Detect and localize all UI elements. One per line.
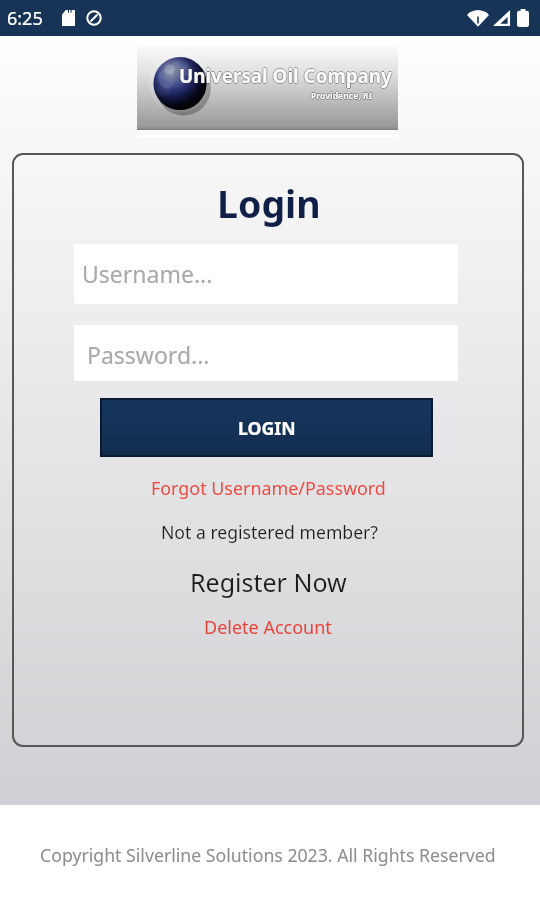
staticText: Universal Oil Company — [179, 62, 392, 88]
staticText: Universal Oil Company — [180, 63, 393, 89]
other: Wi-Fi — [467, 9, 489, 27]
staticText: Universal Oil Company — [179, 63, 392, 89]
staticText: Username... — [82, 258, 213, 289]
staticText: Delete Account — [204, 615, 332, 640]
staticText: Register Now — [190, 565, 347, 599]
other: Battery — [517, 9, 529, 27]
other: Do not disturb — [86, 10, 102, 26]
staticText: Providence, RI — [311, 89, 373, 101]
button[interactable]: Username... — [74, 244, 458, 304]
staticText: Providence, RI — [312, 90, 374, 102]
staticText: Password... — [87, 339, 210, 370]
button[interactable]: LOGIN — [100, 398, 433, 457]
staticText: Providence, RI — [311, 90, 373, 102]
staticText: 6:25 — [7, 6, 43, 31]
staticText: Universal Oil Company — [179, 64, 392, 90]
staticText: Login — [217, 178, 321, 229]
staticText: Copyright Silverline Solutions 2023. All… — [40, 843, 496, 867]
staticText: LOGIN — [238, 416, 296, 440]
other: SD card — [62, 10, 75, 26]
button[interactable]: Password... — [74, 325, 458, 381]
staticText: Providence, RI — [310, 90, 372, 102]
staticText: Forgot Username/Password — [151, 476, 386, 500]
button[interactable]: Register Now — [180, 560, 357, 604]
button[interactable]: Forgot Username/Password — [143, 472, 394, 504]
other: Mobile signal — [492, 9, 511, 27]
button[interactable]: Delete Account — [196, 611, 340, 644]
staticText: Providence, RI — [311, 91, 373, 103]
staticText: Not a registered member? — [161, 520, 378, 544]
staticText: Universal Oil Company — [178, 63, 391, 89]
